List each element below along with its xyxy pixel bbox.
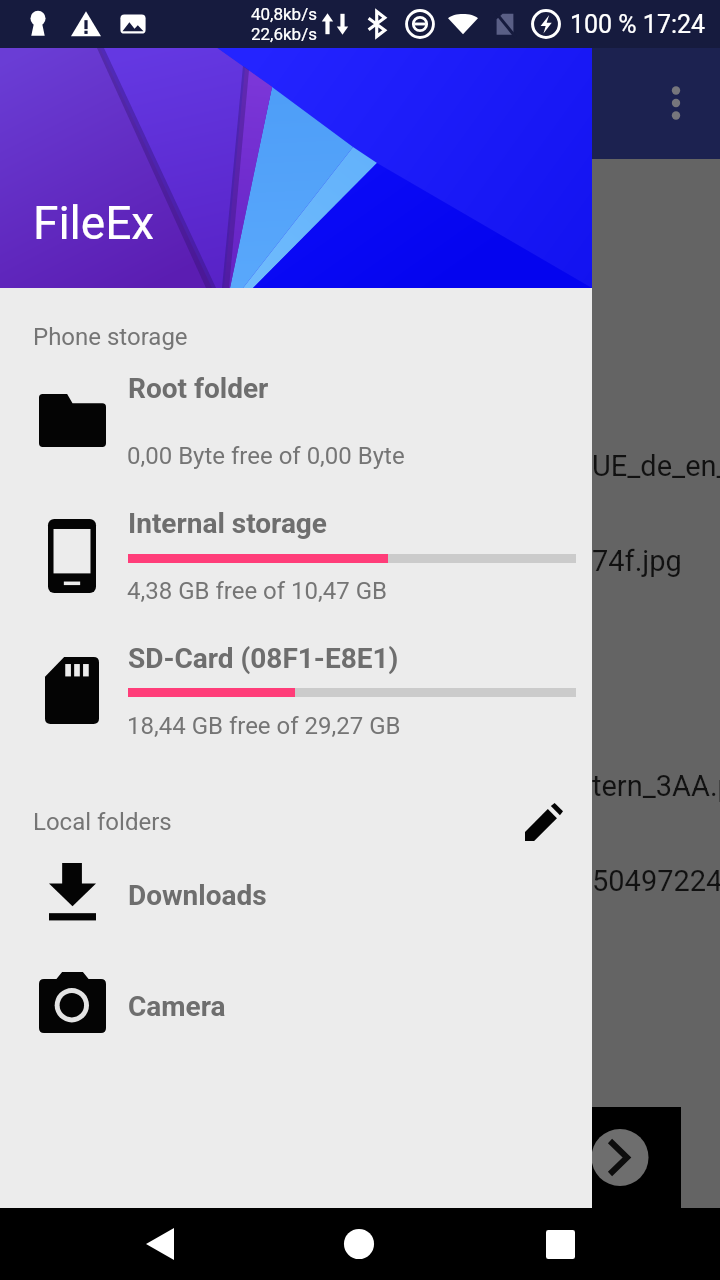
button[interactable]: Recents <box>510 1208 610 1280</box>
staticText: Downloads <box>128 879 267 912</box>
staticText: 40,8kb/s <box>251 4 317 24</box>
button: Local folders <box>33 808 172 836</box>
staticText: tern_3AA.p <box>592 769 720 803</box>
staticText: 4,38 GB free of 10,47 GB <box>127 577 387 605</box>
staticText: 18,44 GB free of 29,27 GB <box>127 712 401 740</box>
staticText: UE_de_en_0 <box>592 449 720 483</box>
staticText: SD-Card (08F1-E8E1) <box>128 642 399 675</box>
staticText: 100 % 17:24 <box>570 10 706 39</box>
staticText: Root folder <box>128 372 269 405</box>
button[interactable]: Next <box>592 1129 649 1186</box>
staticText: 50497224 <box>592 864 720 898</box>
staticText: 22,6kb/s <box>251 24 317 44</box>
staticText: 74f.jpg <box>592 544 682 578</box>
staticText: 0,00 Byte free of 0,00 Byte <box>127 442 405 470</box>
button[interactable]: Back <box>110 1208 210 1280</box>
button[interactable]: More options <box>646 73 706 133</box>
staticText: FileEx <box>33 196 155 250</box>
button[interactable]: Home <box>309 1208 409 1280</box>
staticText: Internal storage <box>128 507 327 540</box>
button: Phone storage <box>33 323 188 351</box>
staticText: Camera <box>128 990 226 1023</box>
button[interactable]: Edit local folders <box>513 791 575 853</box>
